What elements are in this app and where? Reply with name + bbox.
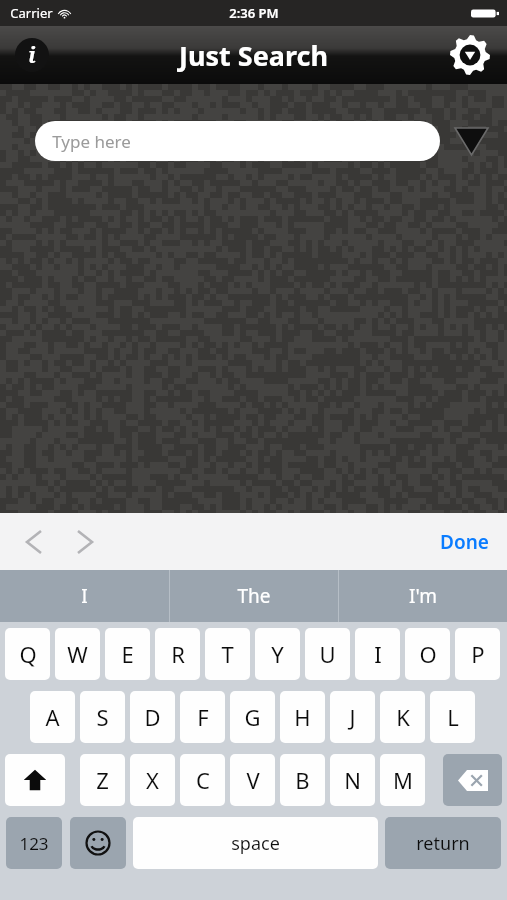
button[interactable]: W — [55, 628, 100, 680]
button[interactable]: X — [130, 754, 175, 806]
button[interactable]: P — [455, 628, 500, 680]
staticText: I — [81, 583, 88, 609]
button[interactable]: Type here — [35, 121, 440, 161]
staticText: Carrier — [10, 4, 53, 22]
staticText: 2:36 PM — [229, 4, 279, 22]
staticText: return — [416, 831, 470, 856]
button[interactable]: Q — [5, 628, 50, 680]
button[interactable]: I — [355, 628, 400, 680]
button[interactable]: K — [380, 691, 425, 743]
staticText: J — [349, 702, 356, 732]
staticText: N — [344, 765, 361, 795]
staticText: Type here — [52, 130, 131, 153]
staticText: I'm — [409, 583, 437, 609]
button[interactable]: D — [130, 691, 175, 743]
button[interactable]: Show options — [451, 121, 491, 161]
staticText: T — [221, 639, 234, 669]
button[interactable]: G — [230, 691, 275, 743]
button[interactable]: U — [305, 628, 350, 680]
staticText: F — [197, 702, 209, 732]
button[interactable]: T — [205, 628, 250, 680]
staticText: C — [196, 765, 210, 795]
button[interactable]: M — [380, 754, 425, 806]
staticText: U — [319, 639, 336, 669]
button[interactable]: Backspace — [443, 754, 502, 806]
staticText: V — [246, 765, 260, 795]
button[interactable]: Next — [65, 522, 105, 562]
staticText: M — [393, 765, 413, 795]
button[interactable]: return — [385, 817, 501, 869]
button[interactable]: F — [180, 691, 225, 743]
staticText: Z — [96, 765, 109, 795]
button[interactable]: Settings — [448, 33, 492, 77]
button[interactable]: B — [280, 754, 325, 806]
button[interactable]: V — [230, 754, 275, 806]
button[interactable]: The — [169, 570, 338, 622]
button[interactable]: I'm — [338, 570, 507, 622]
button[interactable]: Previous — [14, 522, 54, 562]
staticText: D — [144, 702, 161, 732]
button[interactable]: H — [280, 691, 325, 743]
button[interactable]: Shift — [5, 754, 65, 806]
button[interactable]: Z — [80, 754, 125, 806]
button[interactable]: Y — [255, 628, 300, 680]
staticText: R — [171, 639, 185, 669]
button[interactable]: Emoji — [70, 817, 126, 869]
button[interactable]: O — [405, 628, 450, 680]
button[interactable]: S — [80, 691, 125, 743]
staticText: S — [96, 702, 109, 732]
staticText: L — [447, 702, 459, 732]
staticText: E — [121, 639, 134, 669]
staticText: H — [294, 702, 311, 732]
button[interactable]: J — [330, 691, 375, 743]
button[interactable]: Done — [422, 519, 507, 565]
button[interactable]: R — [155, 628, 200, 680]
button[interactable]: L — [430, 691, 475, 743]
staticText: The — [237, 583, 271, 609]
staticText: space — [231, 831, 280, 856]
staticText: X — [146, 765, 159, 795]
staticText: K — [396, 702, 410, 732]
staticText: W — [67, 639, 88, 669]
staticText: P — [471, 639, 485, 669]
staticText: B — [295, 765, 310, 795]
button[interactable]: N — [330, 754, 375, 806]
button[interactable]: E — [105, 628, 150, 680]
button[interactable]: Info — [12, 35, 52, 75]
button[interactable]: 123 — [6, 817, 62, 869]
button[interactable]: I — [0, 570, 169, 622]
staticText: Q — [19, 639, 37, 669]
staticText: Done — [440, 529, 489, 555]
staticText: I — [374, 639, 382, 669]
staticText: G — [244, 702, 261, 732]
button[interactable]: space — [133, 817, 378, 869]
button[interactable]: C — [180, 754, 225, 806]
staticText: 123 — [19, 832, 49, 855]
staticText: i — [28, 41, 36, 70]
staticText: O — [419, 639, 437, 669]
staticText: Just Search — [179, 37, 328, 74]
staticText: A — [45, 702, 60, 732]
staticText: Y — [271, 639, 284, 669]
button[interactable]: A — [30, 691, 75, 743]
